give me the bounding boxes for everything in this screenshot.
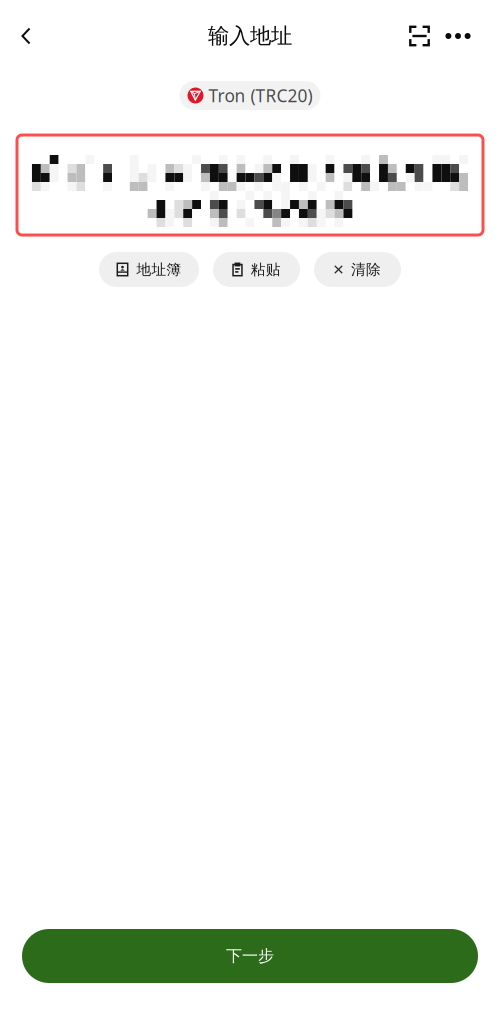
button[interactable]: 清除 bbox=[314, 252, 401, 287]
staticText: 下一步 bbox=[226, 946, 274, 966]
staticText: Tron (TRC20) bbox=[208, 84, 312, 107]
staticText: 粘贴 bbox=[251, 260, 281, 278]
button[interactable]: 下一步 bbox=[22, 929, 478, 983]
button[interactable]: 粘贴 bbox=[213, 252, 300, 287]
button[interactable]: More options bbox=[438, 14, 478, 58]
staticText: 输入地址 bbox=[208, 23, 292, 49]
button[interactable]: Tron (TRC20) bbox=[179, 81, 320, 110]
button[interactable]: 地址簿 bbox=[99, 252, 199, 287]
staticText: 清除 bbox=[351, 260, 381, 278]
button[interactable]: Back bbox=[4, 14, 48, 58]
staticText: 地址簿 bbox=[136, 260, 181, 278]
button[interactable]: Scan code bbox=[401, 14, 438, 58]
